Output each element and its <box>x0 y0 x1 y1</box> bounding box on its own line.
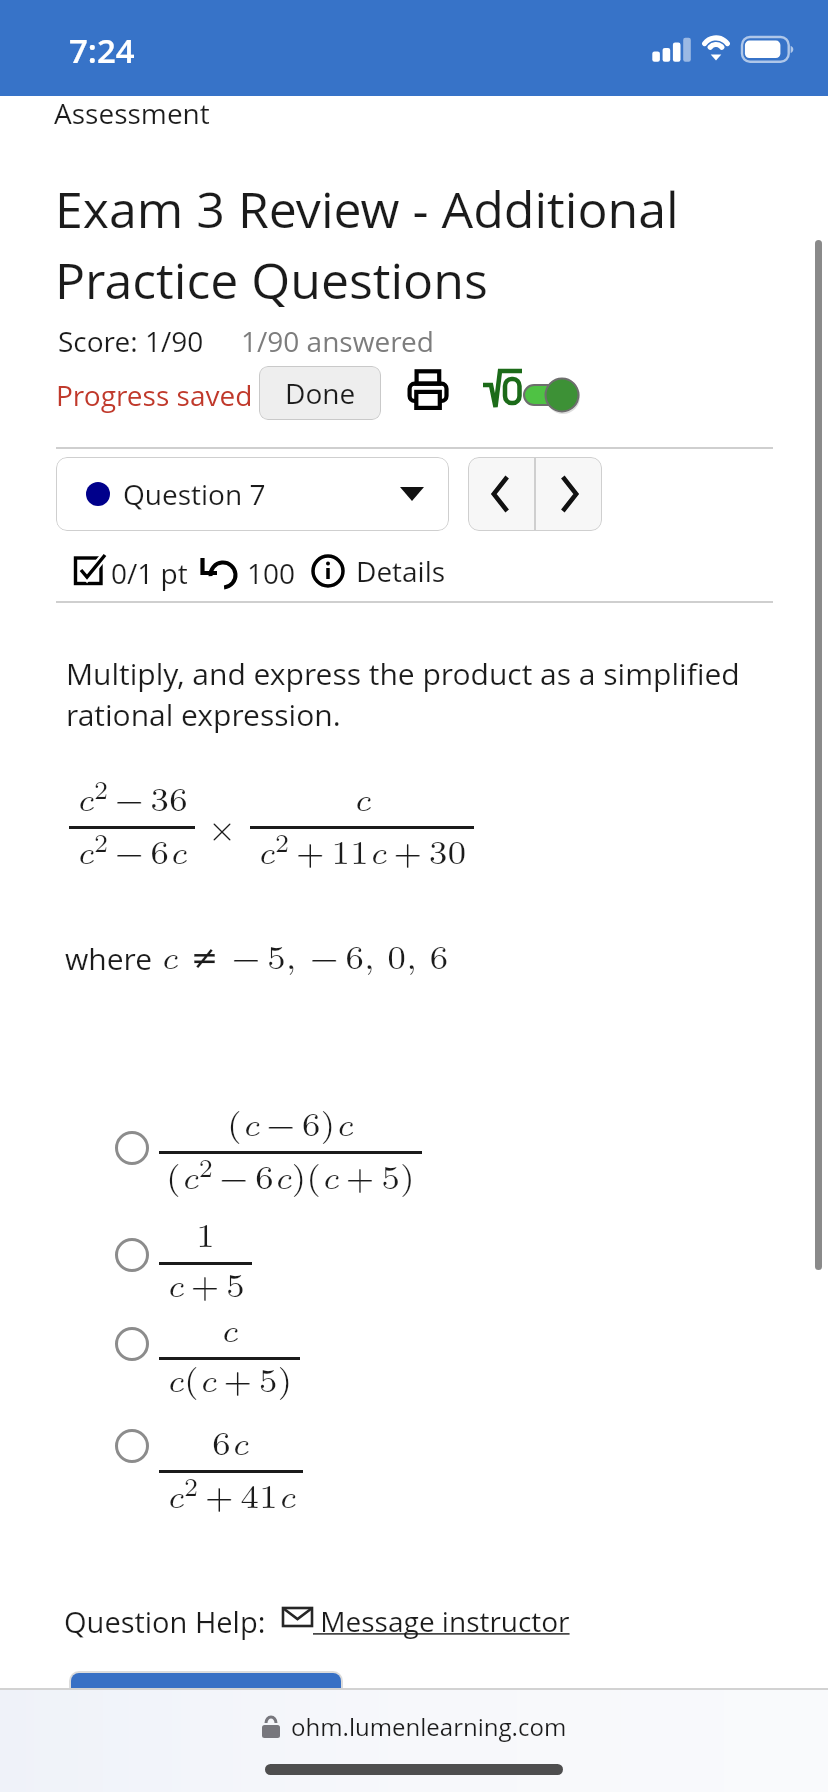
button[interactable]: Print <box>403 365 447 409</box>
staticText: 1 <box>196 1210 215 1257</box>
staticText: Exam 3 Review - Additional Practice Ques… <box>55 175 679 314</box>
staticText: 0/1 pt <box>111 554 188 592</box>
staticText: c2 + 11c + 30 <box>257 824 467 874</box>
button[interactable]: Toggle math keyboard <box>479 364 589 414</box>
staticText: c + 5 <box>166 1260 245 1307</box>
staticText: c2 − 36 <box>76 771 188 821</box>
staticText: Progress saved <box>56 376 253 414</box>
staticText: 6c <box>212 1418 249 1465</box>
staticText: where <box>65 938 160 979</box>
button[interactable]: Previous question <box>468 457 534 531</box>
staticText: Done <box>285 374 356 412</box>
staticText: ohm.lumenlearning.com <box>291 1710 567 1743</box>
staticText: 1/90 answered <box>241 322 434 360</box>
staticText: Multiply, and express the product as a s… <box>66 653 740 735</box>
staticText: Details <box>356 552 446 590</box>
button[interactable]: Next question <box>536 457 602 531</box>
staticText: Question Help: <box>64 1602 266 1641</box>
staticText: × <box>208 804 237 849</box>
staticText: c2 + 41c <box>166 1468 296 1518</box>
staticText: Score: 1/90 <box>58 322 204 360</box>
staticText: c2 − 6c <box>76 824 187 874</box>
staticText: Assessment <box>54 94 210 132</box>
staticText: (c2 − 6c)(c + 5) <box>166 1149 415 1199</box>
staticText: Question 7 <box>123 475 266 513</box>
button[interactable]: Details <box>311 552 446 590</box>
staticText: 7:24 <box>69 28 135 73</box>
button[interactable] <box>71 1673 341 1729</box>
button[interactable]: Message instructor <box>282 1602 570 1640</box>
button[interactable]: Done <box>259 366 381 420</box>
staticText: c(c + 5) <box>166 1355 293 1402</box>
staticText: 100 <box>247 554 296 592</box>
staticText: c ≠ − 5, − 6, 0, 6 <box>160 932 449 979</box>
staticText: c <box>220 1305 238 1352</box>
staticText: (c − 6)c <box>227 1099 354 1146</box>
button[interactable]: Question 7 <box>56 457 449 531</box>
staticText: Message instructor <box>313 1602 570 1640</box>
staticText: c <box>353 774 371 821</box>
